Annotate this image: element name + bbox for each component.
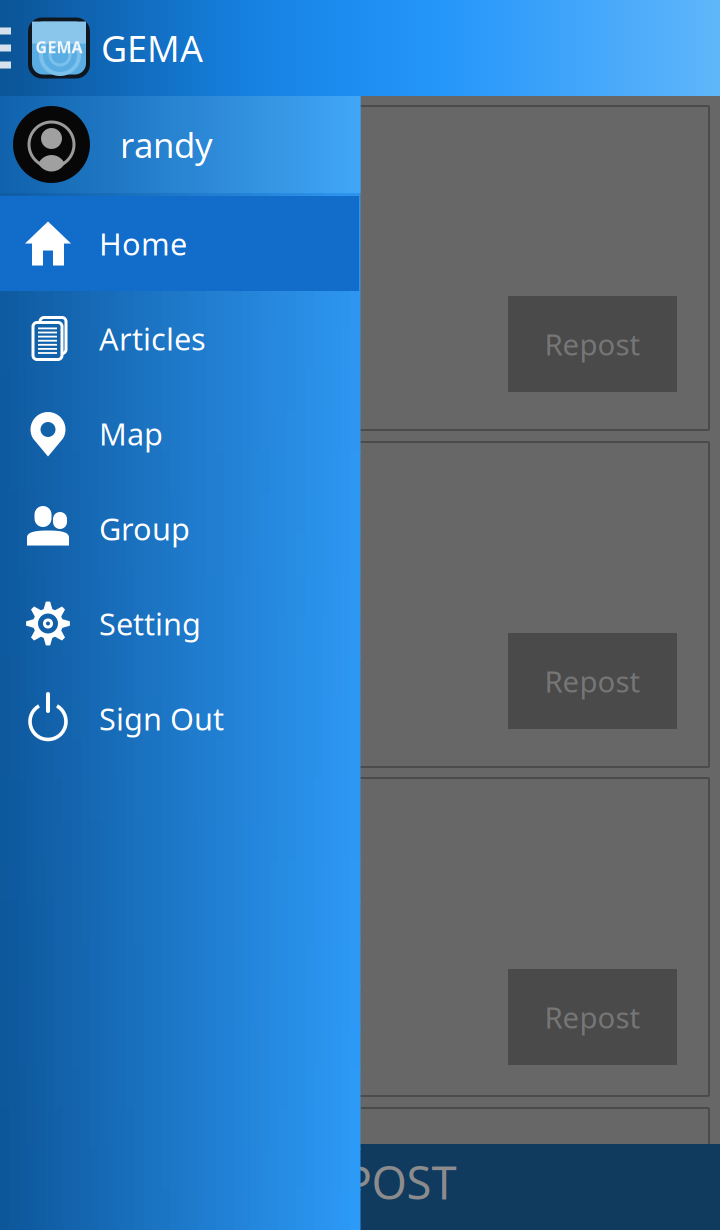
staticText: Map	[99, 413, 163, 454]
staticText: Repost	[544, 324, 640, 363]
button[interactable]: randy	[0, 96, 359, 193]
staticText: Setting	[99, 603, 201, 644]
staticText: GEMA	[35, 36, 82, 58]
button[interactable]: Repost	[508, 969, 677, 1065]
button[interactable]: Setting	[0, 576, 359, 671]
staticText: Repost	[544, 997, 640, 1036]
button[interactable]: Articles	[0, 291, 359, 386]
button[interactable]: Repost	[508, 633, 677, 729]
staticText: POST	[344, 1152, 456, 1212]
staticText: Group	[99, 508, 190, 549]
button[interactable]: Home	[0, 196, 359, 291]
button[interactable]: Repost	[508, 296, 677, 392]
staticText: Sign Out	[99, 698, 224, 739]
button[interactable]: Map	[0, 386, 359, 481]
button[interactable]: Menu	[0, 0, 12, 96]
staticText: Articles	[99, 318, 206, 359]
button[interactable]: Group	[0, 481, 359, 576]
staticText: Home	[99, 223, 187, 264]
staticText: randy	[120, 121, 213, 167]
button[interactable]: Sign Out	[0, 671, 359, 766]
staticText: GEMA	[101, 24, 203, 72]
staticText: Repost	[544, 661, 640, 700]
